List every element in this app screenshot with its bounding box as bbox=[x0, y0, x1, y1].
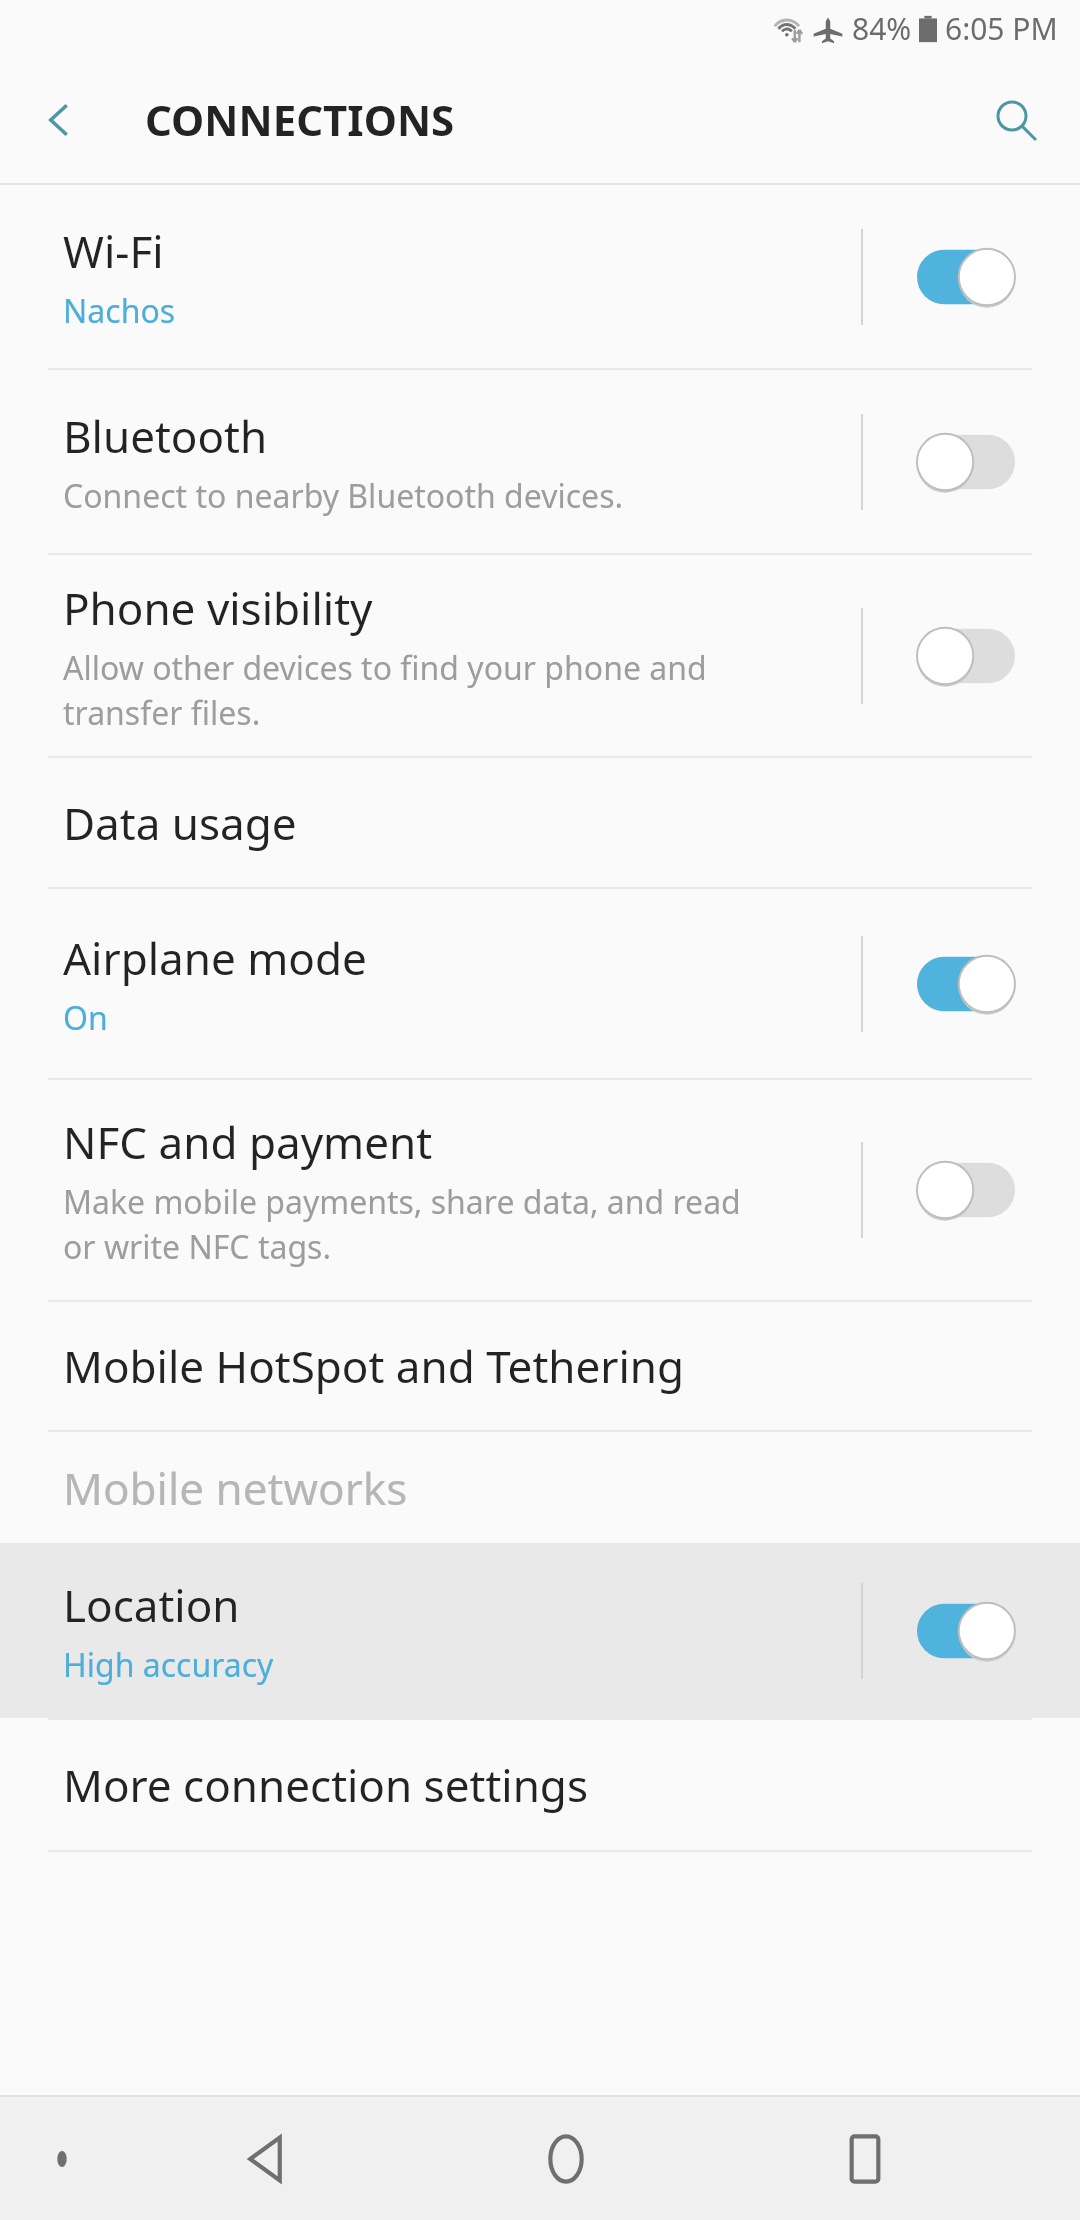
staticText: More connection settings bbox=[63, 1755, 588, 1815]
staticText: NFC and payment bbox=[63, 1112, 433, 1172]
button[interactable]: Airplane mode switch bbox=[896, 936, 1036, 1032]
button[interactable]: Home bbox=[416, 2097, 715, 2220]
button[interactable]: Phone visibility switch bbox=[896, 608, 1036, 704]
staticText: Nachos bbox=[63, 289, 176, 333]
staticText: Allow other devices to find your phone a… bbox=[63, 646, 760, 734]
button[interactable]: Recent apps bbox=[715, 2097, 1014, 2220]
button[interactable]: Location bbox=[0, 1543, 1080, 1718]
button[interactable]: Hide keyboard bbox=[26, 2123, 98, 2195]
staticText: Mobile networks bbox=[63, 1458, 408, 1518]
staticText: Connect to nearby Bluetooth devices. bbox=[63, 474, 624, 518]
staticText: CONNECTIONS bbox=[145, 91, 455, 148]
button[interactable]: Wi-Fi bbox=[0, 185, 1080, 368]
staticText: Airplane mode bbox=[63, 928, 367, 988]
button[interactable]: NFC and payment bbox=[0, 1080, 1080, 1300]
staticText: 6:05 PM bbox=[945, 8, 1058, 49]
button[interactable]: Data usage bbox=[0, 758, 1080, 887]
button[interactable]: More connection settings bbox=[0, 1720, 1080, 1850]
button[interactable]: Mobile networks bbox=[0, 1432, 1080, 1543]
button[interactable]: Back bbox=[118, 2097, 416, 2220]
button[interactable]: Wi-Fi switch bbox=[896, 229, 1036, 325]
staticText: Data usage bbox=[63, 793, 297, 853]
button[interactable]: Search bbox=[976, 80, 1056, 160]
staticText: Phone visibility bbox=[63, 578, 373, 638]
button[interactable]: Bluetooth bbox=[0, 370, 1080, 553]
button[interactable]: Location switch bbox=[896, 1583, 1036, 1679]
button[interactable]: Airplane mode bbox=[0, 889, 1080, 1078]
staticText: On bbox=[63, 996, 108, 1040]
staticText: Mobile HotSpot and Tethering bbox=[63, 1336, 685, 1396]
button[interactable]: NFC and payment switch bbox=[896, 1142, 1036, 1238]
staticText: Location bbox=[63, 1575, 240, 1635]
staticText: Bluetooth bbox=[63, 406, 268, 466]
staticText: 84% bbox=[852, 8, 912, 49]
staticText: Wi-Fi bbox=[63, 221, 164, 281]
staticText: Make mobile payments, share data, and re… bbox=[63, 1180, 760, 1268]
button[interactable]: Phone visibility bbox=[0, 555, 1080, 756]
button[interactable]: Bluetooth switch bbox=[896, 414, 1036, 510]
staticText: High accuracy bbox=[63, 1643, 274, 1687]
button[interactable]: Back bbox=[20, 80, 100, 160]
button[interactable]: Mobile HotSpot and Tethering bbox=[0, 1302, 1080, 1430]
